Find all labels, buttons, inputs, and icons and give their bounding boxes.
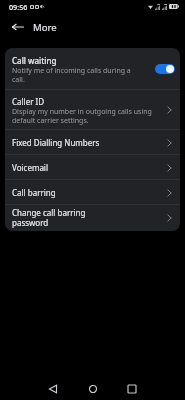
button[interactable]: Voicemail (5, 155, 180, 180)
staticText: Call barring (12, 187, 56, 198)
button[interactable]: Caller ID (5, 90, 180, 130)
staticText: Display my number in outgoing calls usin… (12, 107, 153, 125)
staticText: 09:56 (9, 2, 28, 12)
staticText: Call waiting (12, 55, 57, 66)
staticText: More (33, 21, 57, 34)
button[interactable]: Home (83, 379, 103, 399)
button[interactable]: Back (3, 12, 33, 41)
staticText: Notify me of incoming calls during a cal… (12, 66, 136, 84)
staticText: Voicemail (12, 162, 48, 173)
button[interactable]: Call barring (5, 180, 180, 205)
staticText: Fixed Dialling Numbers (12, 137, 100, 148)
button[interactable]: Back (43, 379, 63, 399)
staticText: Change call barring password (12, 207, 86, 229)
button[interactable]: Change call barring password (5, 205, 180, 231)
button[interactable]: Fixed Dialling Numbers (5, 130, 180, 155)
button[interactable]: Call waiting toggle (155, 64, 175, 74)
button[interactable]: Call waiting (5, 48, 180, 90)
button[interactable]: Recents (122, 379, 142, 399)
staticText: Caller ID (12, 96, 45, 107)
